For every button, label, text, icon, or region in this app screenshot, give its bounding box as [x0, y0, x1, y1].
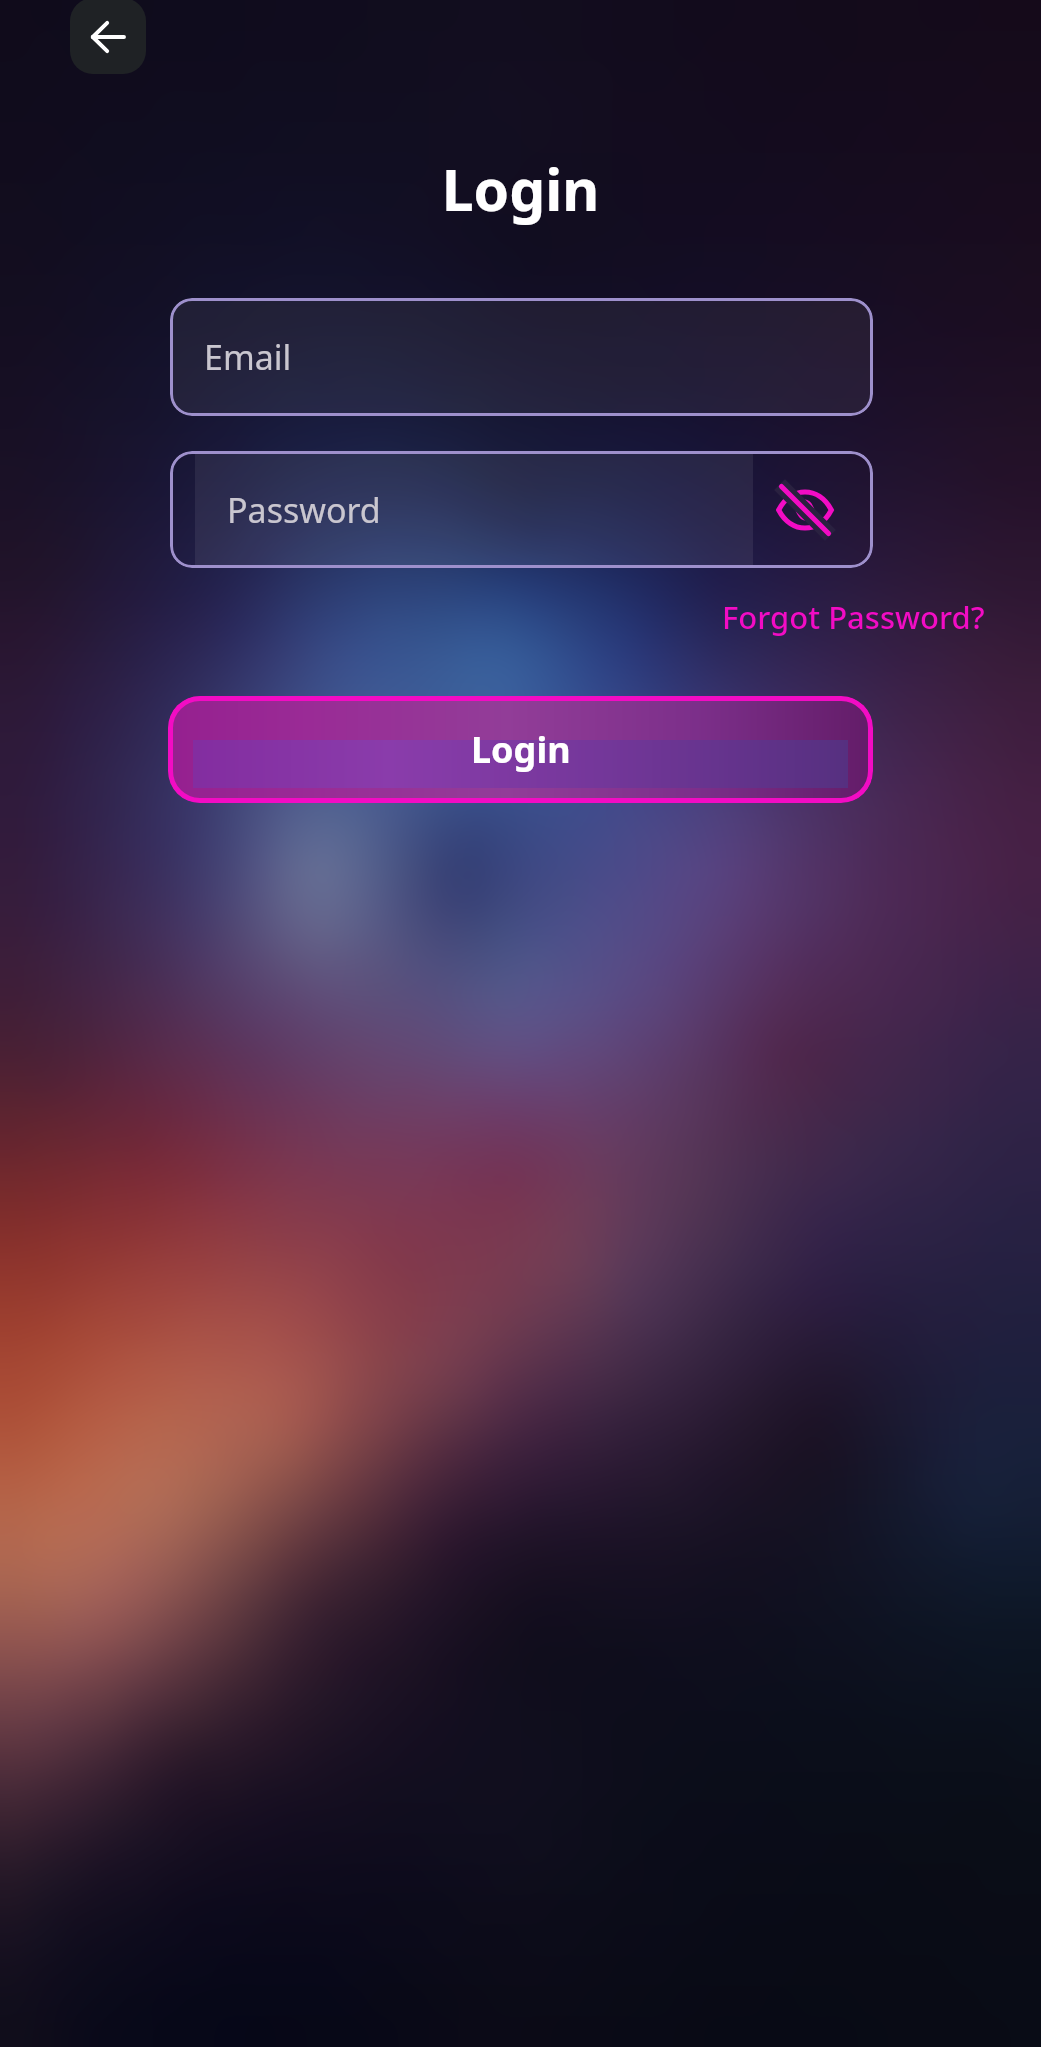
button[interactable]: Login [168, 696, 873, 803]
button[interactable]: Email [170, 298, 873, 416]
staticText: Email [204, 334, 292, 380]
staticText: Login [471, 725, 571, 774]
button[interactable]: Forgot Password? [722, 596, 985, 638]
button[interactable]: Toggle password visibility [774, 479, 836, 541]
staticText: Login [0, 150, 1041, 228]
staticText: Password [227, 487, 381, 533]
button[interactable]: Back [70, 0, 146, 74]
